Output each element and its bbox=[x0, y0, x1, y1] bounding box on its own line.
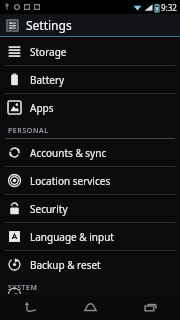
staticText: Storage bbox=[30, 45, 67, 59]
staticText: SYSTEM bbox=[8, 283, 38, 293]
button[interactable]: Settings bbox=[0, 14, 180, 36]
staticText: Accounts & sync bbox=[30, 146, 107, 160]
staticText: Battery bbox=[30, 73, 65, 87]
staticText: Backup & reset bbox=[30, 258, 101, 272]
staticText: Security bbox=[30, 202, 68, 216]
button[interactable]: Apps bbox=[0, 94, 180, 121]
button[interactable]: Back bbox=[0, 294, 60, 320]
button[interactable]: Battery bbox=[0, 66, 180, 93]
staticText: 9:32 bbox=[161, 2, 177, 13]
staticText: Settings bbox=[26, 17, 72, 33]
staticText: Location services bbox=[30, 174, 111, 188]
button[interactable]: Recent apps bbox=[120, 294, 180, 320]
button[interactable]: Backup & reset bbox=[0, 251, 180, 278]
staticText: PERSONAL bbox=[8, 126, 49, 136]
staticText: Language & input bbox=[30, 230, 114, 244]
button[interactable]: Home bbox=[60, 294, 120, 320]
button[interactable]: Language & input bbox=[0, 223, 180, 250]
button[interactable]: Accounts & sync bbox=[0, 139, 180, 166]
staticText: Apps bbox=[30, 101, 54, 115]
button[interactable]: Storage bbox=[0, 38, 180, 65]
button[interactable]: Location services bbox=[0, 167, 180, 194]
button[interactable]: Security bbox=[0, 195, 180, 222]
